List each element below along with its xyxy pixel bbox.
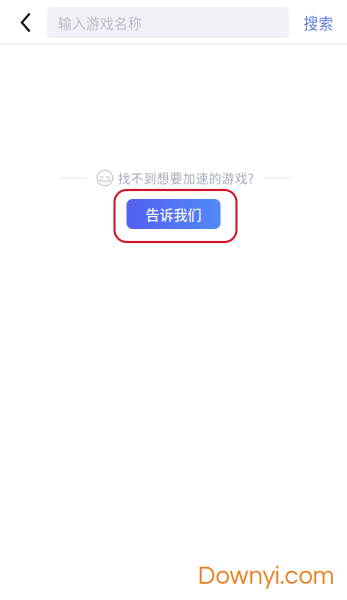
staticText: 输入游戏名称 (58, 13, 142, 32)
button[interactable]: 搜索 (297, 1, 340, 44)
staticText: Downyi.com (198, 563, 335, 589)
staticText: 找不到想要加速的游戏? (118, 169, 254, 187)
staticText: 告诉我们 (145, 204, 201, 224)
button[interactable]: Back (0, 1, 47, 44)
staticText: 搜索 (303, 12, 333, 33)
button[interactable]: 告诉我们 (126, 199, 220, 229)
